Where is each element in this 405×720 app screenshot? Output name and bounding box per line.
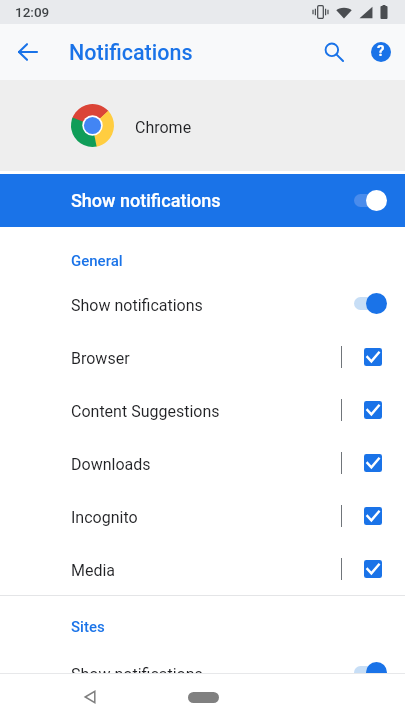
- staticText: Chrome: [135, 118, 192, 137]
- button[interactable]: Show notifications: [0, 277, 405, 330]
- button[interactable]: Help: [359, 30, 403, 74]
- staticText: Show notifications: [71, 665, 354, 684]
- button[interactable]: Incognito: [0, 489, 405, 542]
- button[interactable]: Media: [0, 542, 405, 595]
- staticText: Sites: [71, 618, 105, 636]
- button[interactable]: Browser: [0, 330, 405, 383]
- staticText: Incognito: [71, 508, 341, 527]
- button[interactable]: Home: [173, 682, 233, 712]
- staticText: Show notifications: [71, 190, 354, 211]
- staticText: Media: [71, 561, 341, 580]
- staticText: Show notifications: [71, 296, 354, 315]
- button[interactable]: Back: [70, 677, 110, 717]
- button[interactable]: Show notifications: [0, 174, 405, 227]
- staticText: ?: [377, 42, 385, 60]
- staticText: Notifications: [69, 40, 193, 65]
- staticText: Browser: [71, 349, 341, 368]
- button[interactable]: Downloads: [0, 436, 405, 489]
- staticText: Content Suggestions: [71, 402, 341, 421]
- staticText: Downloads: [71, 455, 341, 474]
- staticText: General: [71, 252, 123, 270]
- button[interactable]: Search: [312, 30, 356, 74]
- button[interactable]: Show notifications: [0, 646, 405, 699]
- staticText: 12:09: [15, 4, 50, 20]
- button[interactable]: Content Suggestions: [0, 383, 405, 436]
- button[interactable]: Back: [4, 28, 52, 76]
